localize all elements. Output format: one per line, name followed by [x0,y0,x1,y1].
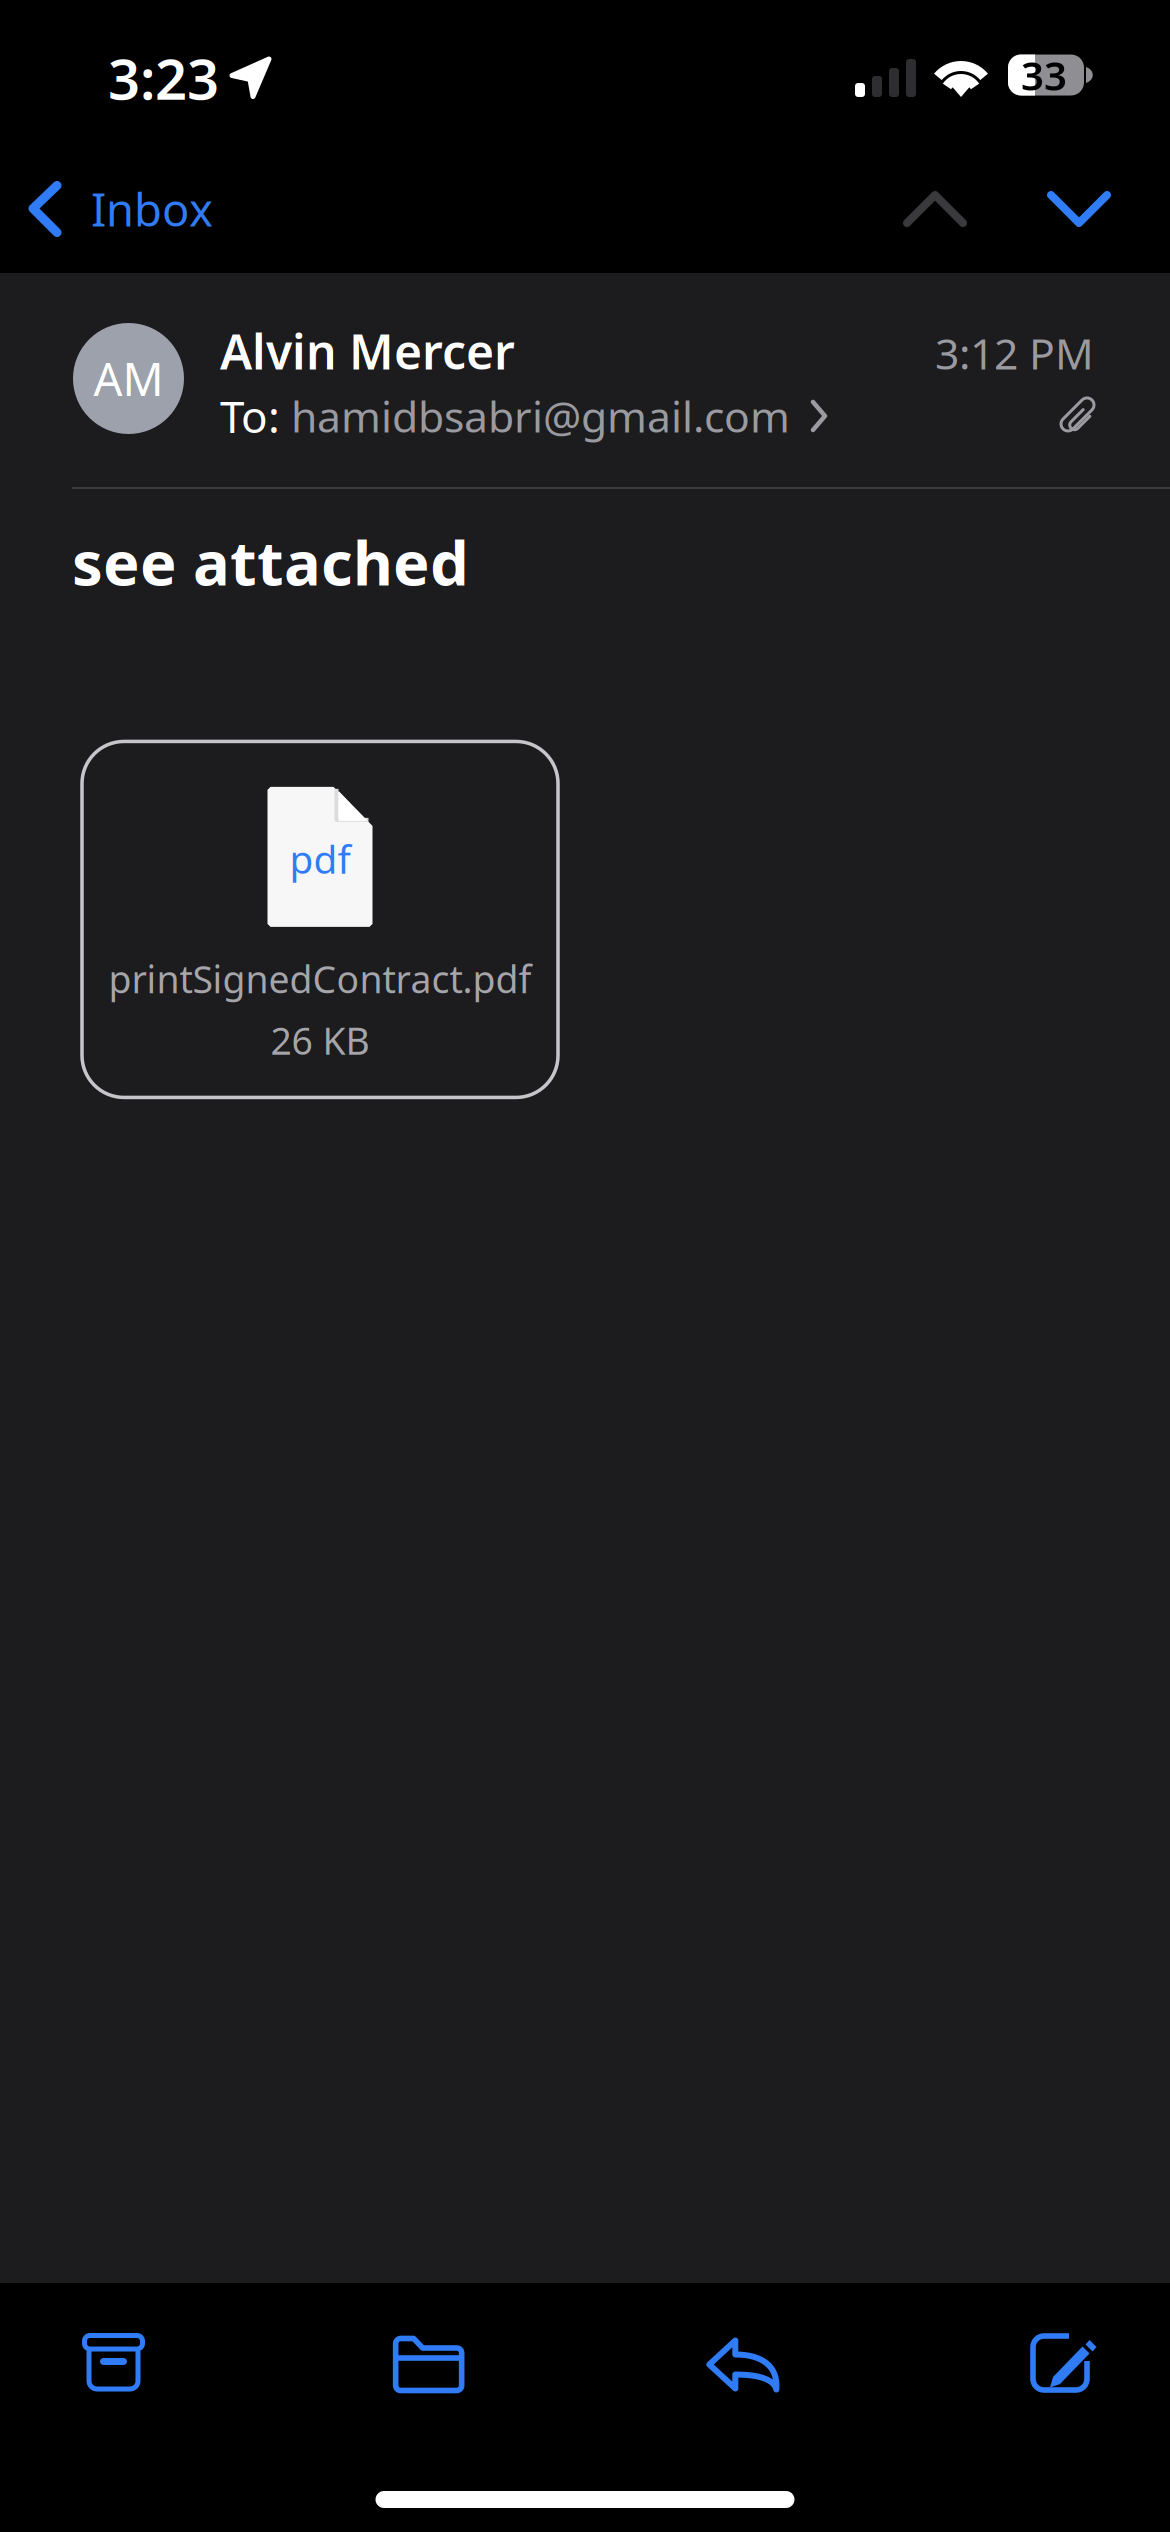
staticText: see attached [72,521,469,602]
button[interactable]: Previous message [863,147,1007,270]
button[interactable]: Compose [982,2315,1132,2419]
staticText: 3:12 PM [935,325,1094,381]
button[interactable]: Inbox [0,147,237,270]
staticText: 33 [1021,48,1067,101]
staticText: To: [220,387,291,445]
staticText: Alvin Mercer [220,319,515,383]
button[interactable]: Attachment [1055,393,1101,439]
button[interactable]: Next message [1007,147,1151,270]
button[interactable]: Archive [38,2315,188,2419]
staticText: printSignedContract.pdf [108,954,531,1003]
button[interactable]: Move to folder [353,2315,503,2419]
staticText: 3:23 [108,41,219,115]
button[interactable]: Reply [667,2315,817,2419]
button[interactable]: pdf [82,741,558,1097]
staticText: pdf [289,833,350,884]
staticText: Inbox [91,179,213,239]
staticText: 26 KB [270,1015,369,1065]
staticText: AM [93,348,163,409]
staticText: hamidbsabri@gmail.com [291,388,790,444]
button[interactable]: hamidbsabri@gmail.com [291,388,829,444]
